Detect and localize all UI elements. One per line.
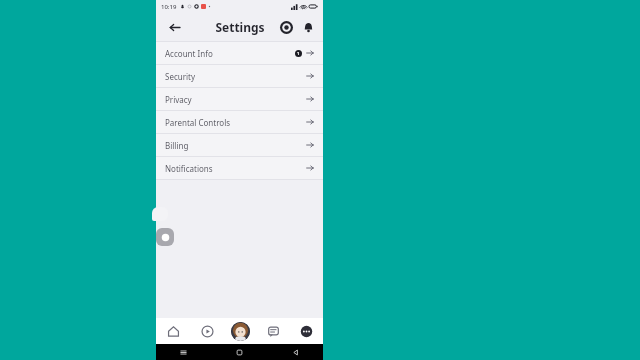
staticText: Billing	[165, 140, 189, 151]
button[interactable]: Home	[156, 318, 190, 344]
staticText: Parental Controls	[165, 117, 231, 128]
button[interactable]: Account Info	[156, 42, 323, 64]
button[interactable]: Privacy	[156, 88, 323, 110]
button[interactable]: More	[290, 318, 323, 344]
button[interactable]: Profile	[231, 322, 250, 341]
button[interactable]: Notifications	[298, 17, 318, 37]
staticText: Notifications	[165, 163, 213, 174]
button[interactable]: Floating control	[156, 228, 174, 246]
staticText: Security	[165, 71, 196, 82]
button[interactable]: Parental Controls	[156, 111, 323, 133]
staticText: 1	[297, 51, 300, 56]
staticText: Privacy	[165, 94, 192, 105]
button[interactable]: Notifications	[156, 157, 323, 179]
button[interactable]: Record	[276, 17, 296, 37]
button[interactable]: Security	[156, 65, 323, 87]
button[interactable]: Videos	[190, 318, 224, 344]
button[interactable]: Billing	[156, 134, 323, 156]
staticText: Settings	[215, 19, 265, 35]
button[interactable]: Messages	[257, 318, 290, 344]
button[interactable]: Back	[164, 17, 184, 37]
staticText: Account Info	[165, 48, 213, 59]
staticText: 10:19	[161, 3, 177, 11]
